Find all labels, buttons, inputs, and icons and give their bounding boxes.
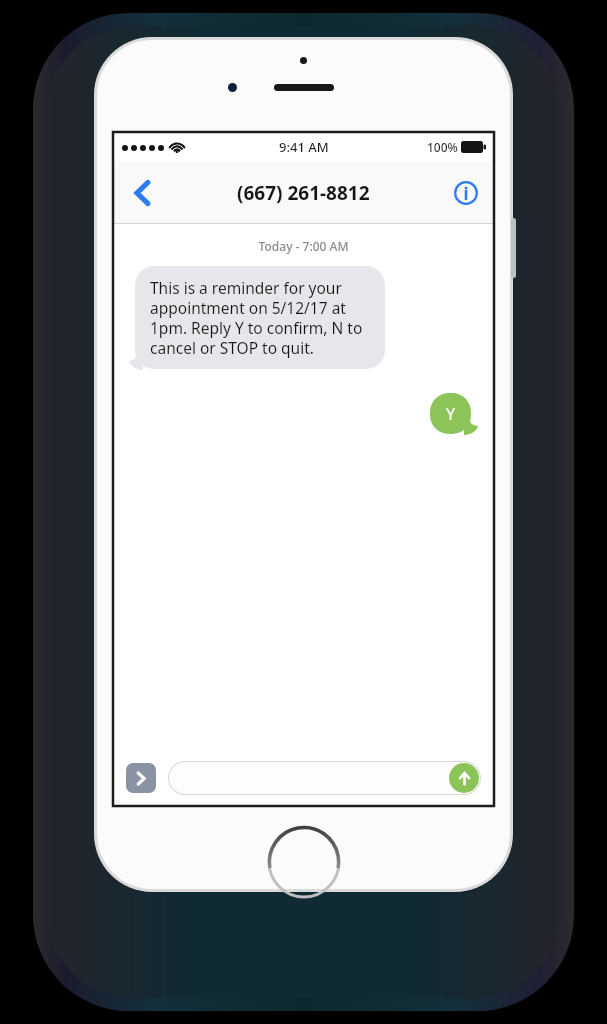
button[interactable]: More options — [126, 763, 156, 793]
staticText: (667) 261-8812 — [237, 180, 370, 206]
staticText: Today - 7:00 AM — [114, 238, 493, 254]
button[interactable]: Info — [446, 173, 486, 213]
button[interactable]: Send — [449, 763, 479, 793]
staticText: 100% — [427, 139, 458, 155]
button[interactable]: Home — [268, 826, 340, 898]
button[interactable]: This is a reminder for your appointment … — [135, 266, 385, 369]
staticText: This is a reminder for your appointment … — [150, 277, 370, 358]
staticText: Y — [446, 403, 456, 425]
button[interactable]: Back — [120, 171, 164, 215]
button[interactable]: Y — [430, 393, 471, 434]
button[interactable]: Send — [168, 761, 481, 795]
staticText: 9:41 AM — [279, 138, 329, 156]
